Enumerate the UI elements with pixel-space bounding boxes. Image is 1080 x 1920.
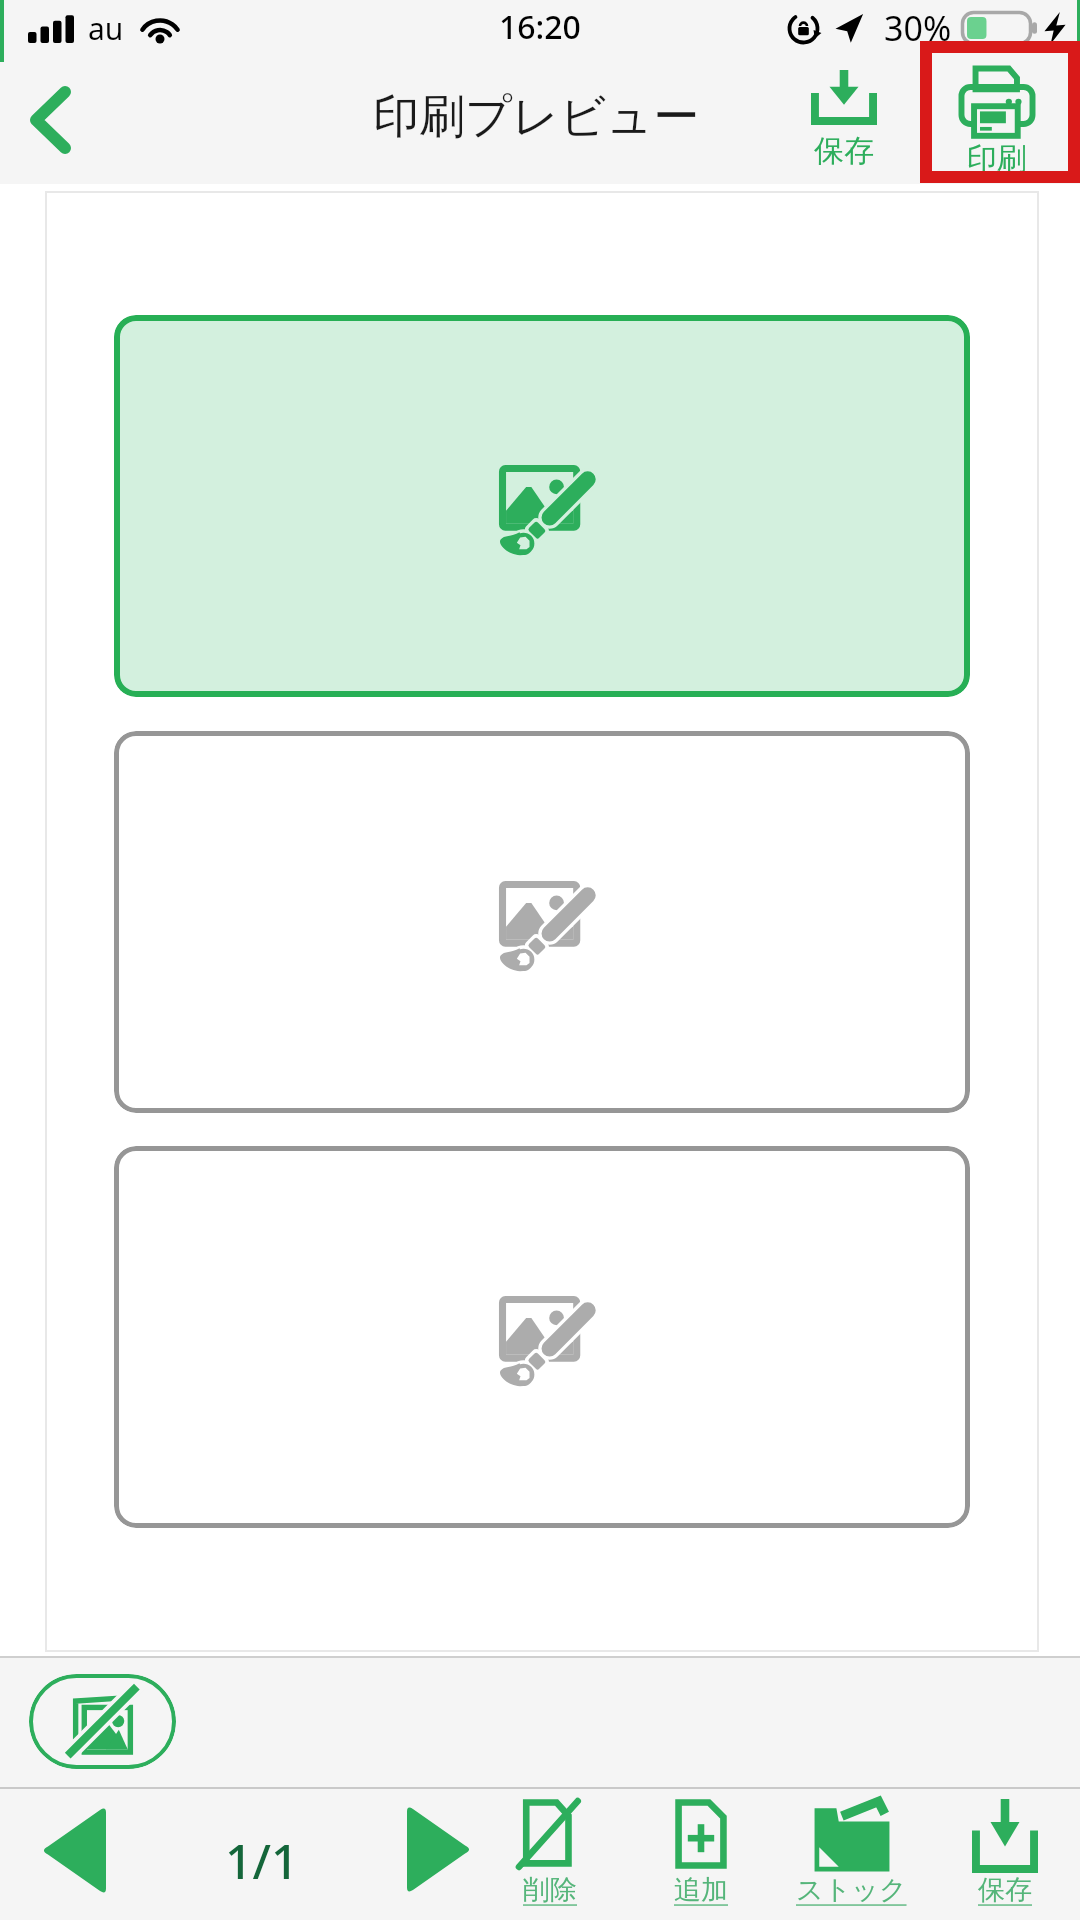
- staticText: 削除: [523, 1873, 577, 1907]
- button[interactable]: Next page: [373, 1787, 503, 1920]
- button[interactable]: 印刷: [927, 56, 1067, 184]
- staticText: 印刷: [967, 140, 1027, 178]
- button[interactable]: 削除: [478, 1787, 622, 1920]
- staticText: 保存: [978, 1873, 1032, 1907]
- button[interactable]: [114, 315, 970, 697]
- button[interactable]: ストック: [779, 1787, 923, 1920]
- button[interactable]: Back: [0, 56, 100, 184]
- button[interactable]: [114, 731, 970, 1113]
- staticText: 16:20: [499, 5, 581, 49]
- staticText: 印刷プレビュー: [373, 88, 700, 146]
- staticText: 保存: [814, 132, 874, 170]
- button[interactable]: 保存: [774, 56, 914, 184]
- button[interactable]: [114, 1146, 970, 1528]
- staticText: 30%: [884, 5, 952, 51]
- staticText: 追加: [674, 1873, 728, 1907]
- button[interactable]: 追加: [629, 1787, 773, 1920]
- button[interactable]: Previous page: [10, 1787, 140, 1920]
- staticText: ストック: [796, 1873, 907, 1907]
- staticText: 1/1: [225, 1828, 299, 1893]
- button[interactable]: 保存: [933, 1787, 1077, 1920]
- staticText: au: [88, 8, 124, 49]
- button[interactable]: Hide image: [29, 1674, 176, 1769]
